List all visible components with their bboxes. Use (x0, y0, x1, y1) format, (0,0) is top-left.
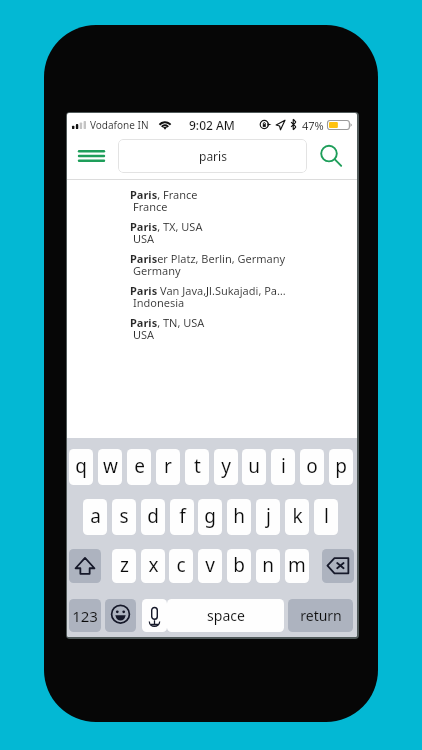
staticText: p (335, 453, 347, 479)
button[interactable]: v (198, 549, 222, 583)
button[interactable]: t (185, 449, 209, 485)
staticText: USA (133, 327, 155, 342)
button[interactable]: Shift (69, 549, 101, 583)
staticText: v (205, 552, 215, 578)
button[interactable]: y (214, 449, 238, 485)
button[interactable]: Paris Van Java,Jl.Sukajadi, Pa… (67, 283, 357, 315)
staticText: paris (199, 148, 227, 164)
staticText: Paris, TX, USA (130, 219, 203, 234)
staticText: Paris Van Java,Jl.Sukajadi, Pa… (130, 283, 286, 298)
staticText: Paris, TN, USA (130, 315, 205, 330)
staticText: s (119, 503, 129, 529)
staticText: c (176, 552, 186, 578)
button[interactable]: w (98, 449, 122, 485)
staticText: n (262, 552, 274, 578)
button[interactable]: o (300, 449, 324, 485)
button[interactable]: b (227, 549, 251, 583)
button[interactable]: c (169, 549, 193, 583)
button[interactable]: Dictate (142, 599, 167, 632)
staticText: g (204, 503, 216, 529)
staticText: space (207, 606, 245, 625)
staticText: e (134, 453, 145, 479)
button[interactable]: n (256, 549, 280, 583)
button[interactable]: a (83, 499, 107, 535)
staticText: k (292, 503, 303, 529)
staticText: z (120, 552, 129, 578)
button[interactable]: Delete (322, 549, 354, 583)
staticText: 123 (72, 606, 98, 626)
staticText: Paris, France (130, 187, 198, 202)
button[interactable]: Paris, France (67, 187, 357, 219)
staticText: b (233, 552, 245, 578)
button[interactable]: i (271, 449, 295, 485)
button[interactable]: l (314, 499, 338, 535)
button[interactable]: j (256, 499, 280, 535)
button[interactable]: d (141, 499, 165, 535)
staticText: return (300, 606, 342, 625)
staticText: 47% (302, 118, 324, 133)
staticText: d (147, 503, 159, 529)
staticText: a (90, 503, 101, 529)
staticText: Vodafone IN (90, 118, 149, 132)
staticText: 9:02 AM (189, 117, 235, 133)
button[interactable]: Paris, TN, USA (67, 315, 357, 347)
staticText: h (233, 503, 245, 529)
staticText: USA (133, 231, 155, 246)
button[interactable]: r (156, 449, 180, 485)
button[interactable]: p (329, 449, 353, 485)
staticText: f (179, 503, 186, 529)
staticText: o (306, 453, 318, 479)
button[interactable]: Pariser Platz, Berlin, Germany (67, 251, 357, 283)
staticText: Germany (133, 263, 181, 278)
button[interactable]: z (112, 549, 136, 583)
button[interactable]: space (167, 599, 284, 632)
button[interactable]: h (227, 499, 251, 535)
staticText: France (133, 199, 168, 214)
button[interactable]: x (141, 549, 165, 583)
button[interactable]: return (288, 599, 353, 632)
button[interactable]: q (69, 449, 93, 485)
staticText: q (75, 453, 87, 479)
staticText: y (221, 453, 231, 479)
staticText: l (324, 503, 329, 529)
button[interactable]: k (285, 499, 309, 535)
staticText: i (281, 453, 286, 479)
button[interactable]: Menu (67, 137, 112, 180)
button[interactable]: m (285, 549, 309, 583)
staticText: x (148, 552, 159, 578)
button[interactable]: Paris, TX, USA (67, 219, 357, 251)
button[interactable]: u (242, 449, 266, 485)
staticText: t (194, 453, 201, 479)
staticText: u (248, 453, 260, 479)
button[interactable]: Search (312, 137, 357, 180)
button[interactable]: g (198, 499, 222, 535)
button[interactable]: paris (118, 139, 307, 173)
staticText: m (288, 552, 306, 578)
staticText: Pariser Platz, Berlin, Germany (130, 251, 286, 266)
staticText: j (266, 503, 271, 529)
button[interactable]: 123 (69, 599, 101, 632)
button[interactable]: s (112, 499, 136, 535)
button[interactable]: Emoji (105, 599, 136, 632)
staticText: w (103, 453, 118, 479)
button[interactable]: f (170, 499, 194, 535)
staticText: Indonesia (133, 295, 185, 310)
button[interactable]: e (127, 449, 151, 485)
staticText: r (164, 453, 172, 479)
